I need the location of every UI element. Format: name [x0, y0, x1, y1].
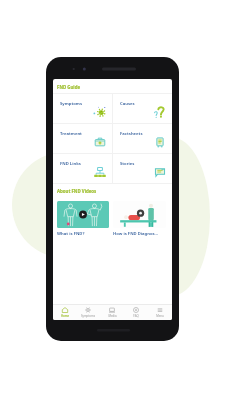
- staticText: Symptoms: [81, 314, 95, 318]
- staticText: Causes: [120, 101, 135, 107]
- button[interactable]: Media: [100, 305, 124, 320]
- staticText: Factsheets: [120, 131, 143, 137]
- staticText: Media: [108, 314, 117, 318]
- button[interactable]: FND Links: [53, 154, 112, 183]
- button[interactable]: Home: [53, 305, 76, 320]
- staticText: Home: [61, 314, 69, 318]
- staticText: How is FND Diagnos...: [113, 231, 159, 237]
- button[interactable]: Symptoms: [53, 94, 112, 123]
- staticText: FND Guide: [57, 84, 81, 90]
- button[interactable]: Menu: [148, 305, 172, 320]
- staticText: Menu: [156, 314, 164, 318]
- staticText: Treatment: [60, 131, 82, 137]
- button[interactable]: Symptoms: [76, 305, 100, 320]
- staticText: Symptoms: [60, 101, 83, 107]
- button[interactable]: FAQ: [124, 305, 148, 320]
- button[interactable]: Causes: [113, 94, 172, 123]
- button[interactable]: What is FND?: [57, 201, 109, 237]
- staticText: About FND Videos: [57, 188, 97, 194]
- staticText: FAQ: [133, 314, 139, 318]
- button[interactable]: Stories: [113, 154, 172, 183]
- button[interactable]: Factsheets: [113, 124, 172, 153]
- staticText: What is FND?: [57, 231, 85, 237]
- staticText: FND Links: [60, 161, 81, 167]
- button[interactable]: How is FND Diagnos...: [113, 201, 166, 237]
- button[interactable]: Treatment: [53, 124, 112, 153]
- staticText: Stories: [120, 161, 135, 167]
